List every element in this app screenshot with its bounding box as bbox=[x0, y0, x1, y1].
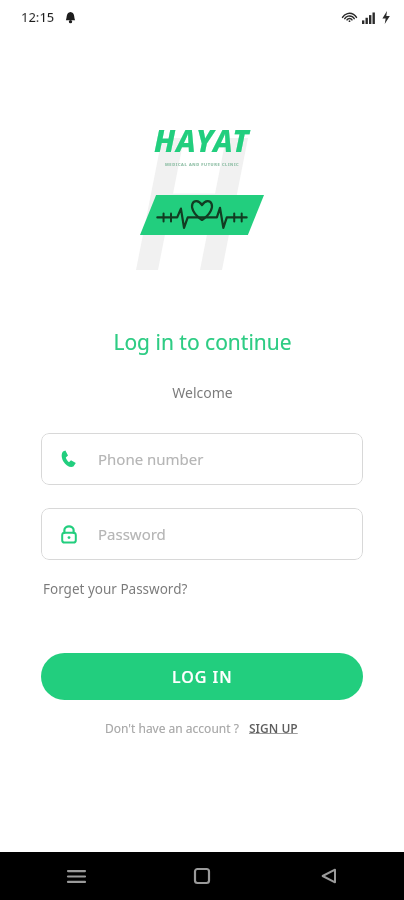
staticText: LOG IN bbox=[172, 666, 233, 688]
staticText: Forget your Password? bbox=[43, 580, 188, 598]
button[interactable]: Recent apps bbox=[54, 854, 98, 898]
staticText: 12:15 bbox=[21, 8, 55, 26]
staticText: Don't have an account ? bbox=[105, 720, 239, 736]
button[interactable]: Home bbox=[180, 854, 224, 898]
staticText: HAYAT bbox=[154, 120, 250, 161]
button[interactable]: Password bbox=[41, 508, 363, 560]
staticText: Welcome bbox=[172, 383, 233, 402]
button[interactable]: Forget your Password? bbox=[41, 575, 190, 603]
button[interactable]: Back bbox=[306, 854, 350, 898]
staticText: Log in to continue bbox=[113, 328, 292, 357]
button[interactable]: SIGN UP bbox=[248, 717, 299, 739]
staticText: MEDICAL AND FUTURE CLINIC bbox=[165, 162, 240, 167]
staticText: Phone number bbox=[98, 449, 204, 469]
button[interactable]: Phone number bbox=[41, 433, 363, 485]
staticText: Password bbox=[98, 524, 166, 544]
button[interactable]: LOG IN bbox=[41, 653, 363, 700]
staticText: SIGN UP bbox=[249, 720, 298, 736]
